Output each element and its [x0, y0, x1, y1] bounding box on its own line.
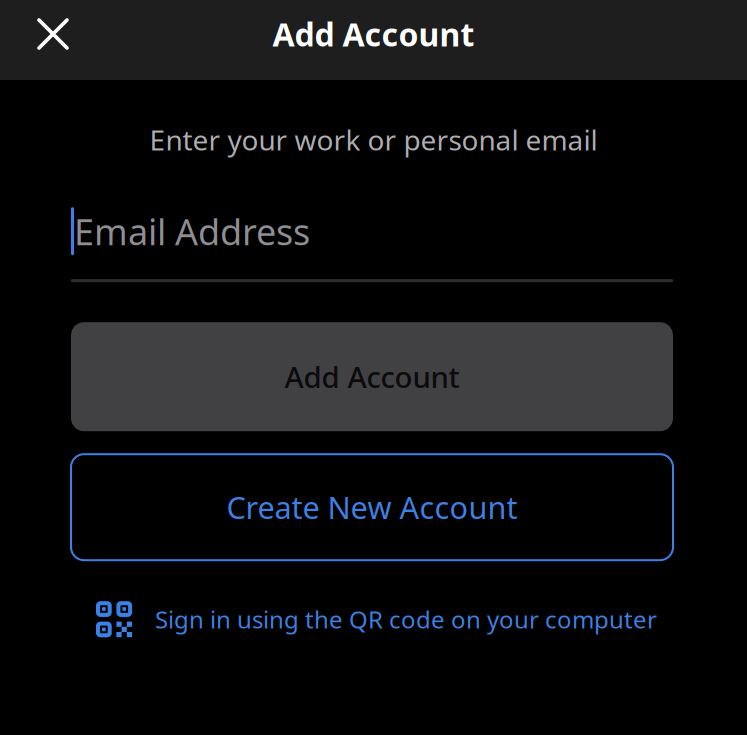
staticText: Enter your work or personal email [149, 121, 597, 158]
staticText: Email Address [74, 207, 310, 255]
staticText: Add Account [284, 357, 459, 396]
staticText: Add Account [272, 13, 474, 55]
button[interactable]: Create New Account [71, 454, 673, 560]
button[interactable]: Close [22, 3, 84, 65]
staticText: Create New Account [226, 487, 517, 527]
button[interactable]: Sign in using the QR code on your comput… [0, 601, 747, 637]
button[interactable]: Add Account [71, 322, 673, 431]
staticText: Sign in using the QR code on your comput… [155, 603, 657, 635]
